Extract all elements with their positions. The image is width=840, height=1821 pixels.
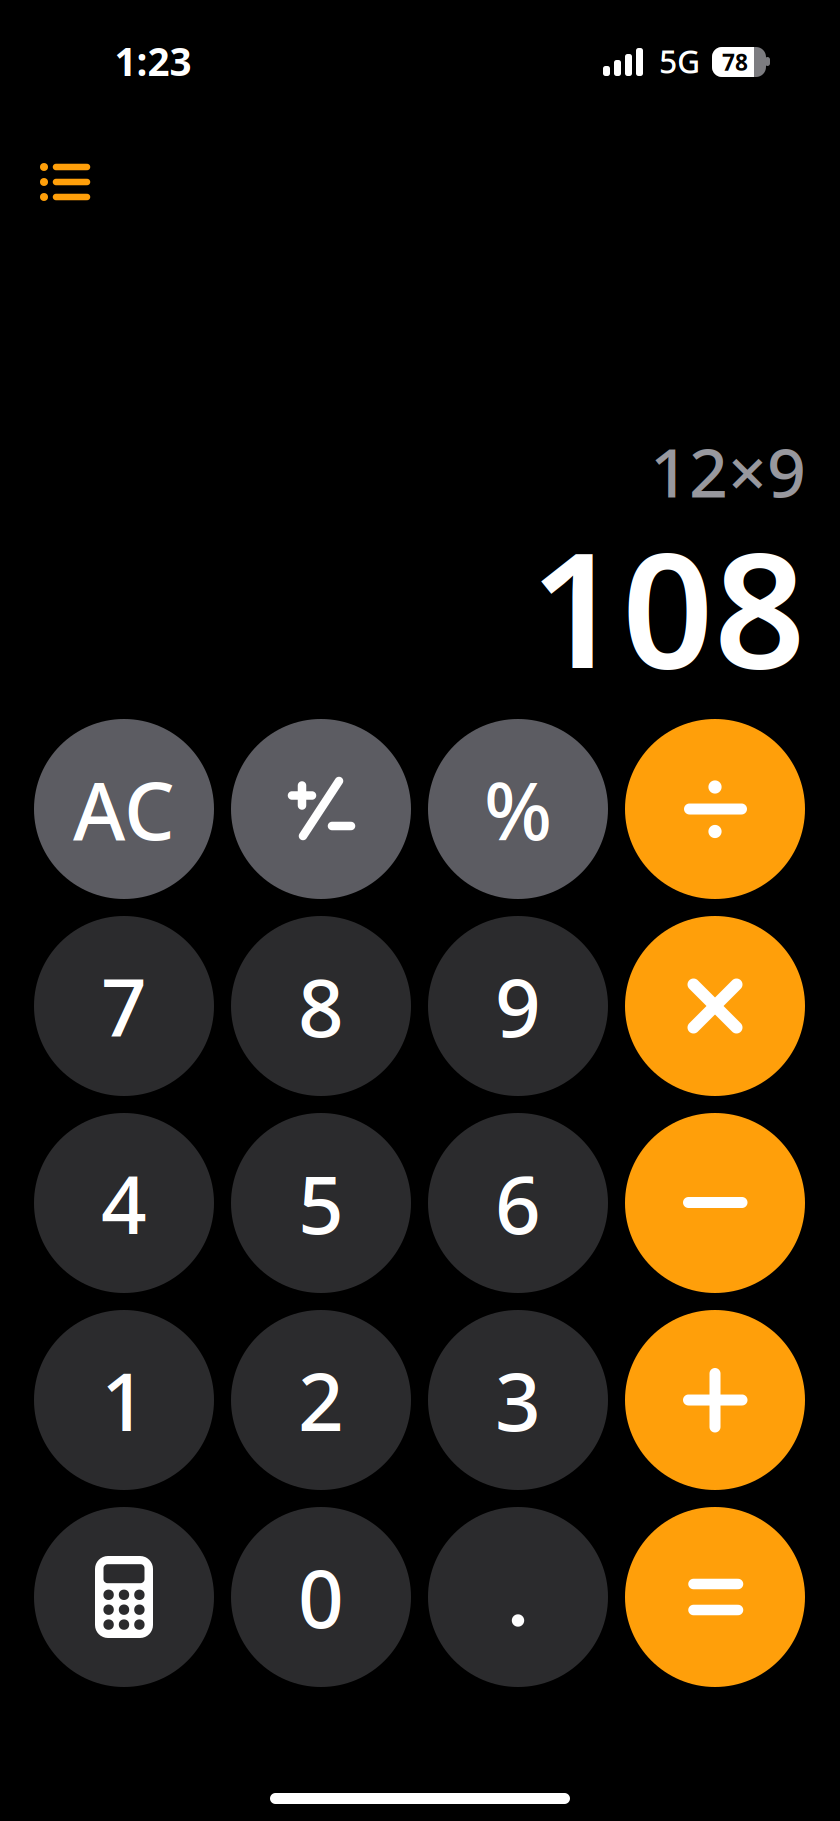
button[interactable]: 8 [231, 916, 411, 1096]
button[interactable]: 9 [428, 916, 608, 1096]
button[interactable]: Divide [625, 719, 805, 899]
staticText: 5G [659, 40, 700, 82]
button[interactable]: Calculator [34, 1507, 214, 1687]
staticText: 0 [298, 1544, 344, 1650]
button[interactable]: 3 [428, 1310, 608, 1490]
staticText: AC [73, 756, 175, 862]
button[interactable]: 4 [34, 1113, 214, 1293]
button[interactable]: Add [625, 1310, 805, 1490]
staticText: 3 [495, 1347, 541, 1453]
button[interactable]: Calculation History [0, 138, 131, 226]
staticText: 9 [495, 953, 541, 1059]
staticText: 78 [722, 47, 748, 77]
button[interactable]: Equals [625, 1507, 805, 1687]
button[interactable]: Subtract [625, 1113, 805, 1293]
button[interactable]: 7 [34, 916, 214, 1096]
button[interactable]: Decimal point [428, 1507, 608, 1687]
button[interactable]: 0 [231, 1507, 411, 1687]
staticText: 6 [495, 1150, 541, 1256]
button[interactable]: 2 [231, 1310, 411, 1490]
staticText: 1 [101, 1347, 147, 1453]
button[interactable]: 5 [231, 1113, 411, 1293]
button[interactable]: % [428, 719, 608, 899]
staticText: 4 [101, 1150, 147, 1256]
button[interactable]: 1 [34, 1310, 214, 1490]
staticText: 1:23 [114, 35, 191, 87]
button[interactable]: Plus Minus [231, 719, 411, 899]
staticText: 12×9 [650, 426, 806, 516]
staticText: 8 [298, 953, 344, 1059]
button[interactable]: 6 [428, 1113, 608, 1293]
staticText: 2 [298, 1347, 344, 1453]
staticText: 5 [298, 1150, 344, 1256]
staticText: 108 [530, 500, 806, 712]
button[interactable]: Multiply [625, 916, 805, 1096]
button[interactable]: AC [34, 719, 214, 899]
staticText: % [484, 756, 552, 862]
staticText: 7 [101, 953, 147, 1059]
